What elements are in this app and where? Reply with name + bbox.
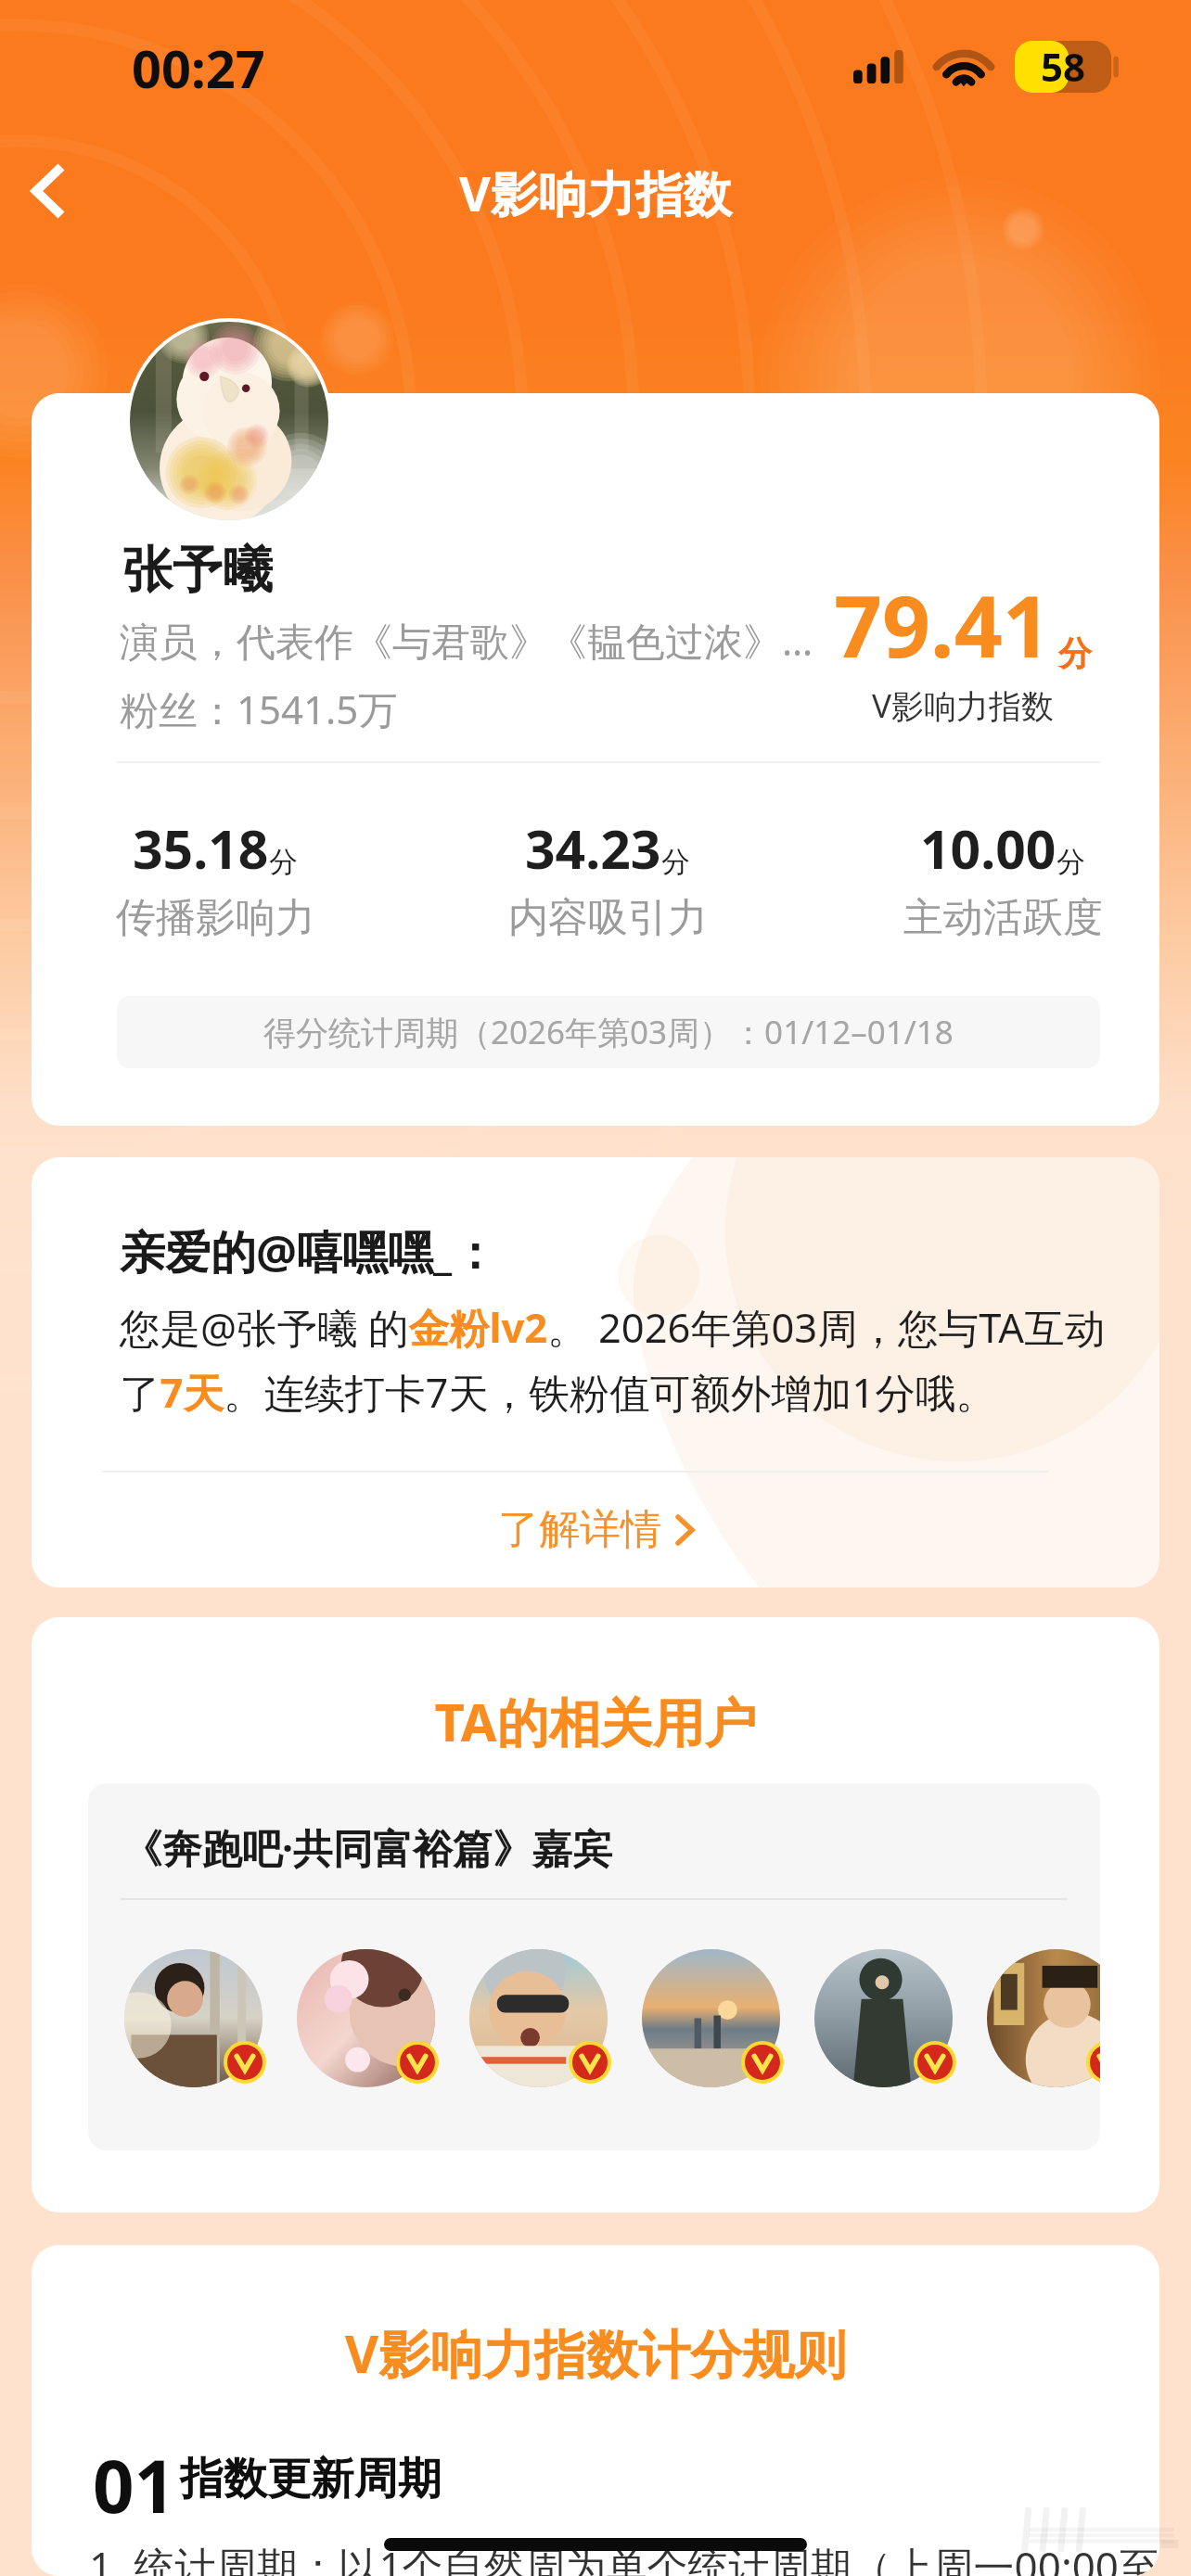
- staticText: 张予曦: [122, 539, 273, 602]
- staticText: V影响力指数计分规则: [32, 2317, 1159, 2388]
- staticText: 指数更新周期: [180, 2452, 442, 2506]
- staticText: 《奔跑吧·共同富裕篇》嘉宾: [122, 1820, 613, 1875]
- button[interactable]: Related user: [814, 1949, 953, 2087]
- button[interactable]: 了解详情: [32, 1471, 1159, 1588]
- staticText: V影响力指数: [459, 159, 732, 225]
- staticText: 您是@张予曦 的金粉lv2。 2026年第03周，您与TA互动了7天。连续打卡7…: [120, 1299, 1114, 1420]
- button[interactable]: 35.18: [32, 812, 419, 942]
- staticText: TA的相关用户: [32, 1686, 1159, 1756]
- staticText: V影响力指数: [872, 683, 1055, 728]
- button[interactable]: Related user: [987, 1949, 1100, 2087]
- staticText: 1. 统计周期：以1个自然周为单个统计周期（上周一00:00至: [89, 2538, 1159, 2576]
- staticText: 内容吸引力: [508, 893, 708, 942]
- button[interactable]: Related user: [297, 1949, 435, 2087]
- button[interactable]: Related user: [469, 1949, 608, 2087]
- button[interactable]: 张予曦: [106, 523, 1117, 746]
- staticText: 79.41: [834, 567, 1051, 682]
- staticText: 01: [93, 2436, 176, 2534]
- staticText: 传播影响力: [116, 893, 315, 942]
- staticText: 了解详情: [498, 1504, 661, 1555]
- staticText: 主动活跃度: [903, 893, 1103, 942]
- staticText: 分: [269, 844, 298, 880]
- button[interactable]: 34.23: [403, 812, 812, 942]
- staticText: 00:27: [132, 32, 265, 103]
- button[interactable]: Back: [2, 145, 95, 237]
- staticText: 演员，代表作《与君歌》《韫色过浓》…: [120, 614, 813, 667]
- button[interactable]: Profile photo: [126, 318, 332, 524]
- staticText: 分: [1057, 844, 1085, 880]
- staticText: 10.00: [920, 812, 1057, 885]
- staticText: 35.18: [133, 812, 269, 885]
- staticText: 粉丝：1541.5万: [120, 682, 398, 735]
- staticText: 分: [1058, 632, 1092, 674]
- staticText: 得分统计周期（2026年第03周）：01/12–01/18: [263, 1010, 954, 1054]
- button[interactable]: Related user: [124, 1949, 263, 2087]
- button[interactable]: Related user: [642, 1949, 780, 2087]
- staticText: 58: [1041, 40, 1086, 92]
- staticText: 分: [661, 844, 690, 880]
- staticText: 亲爱的@嘻嘿嘿_：: [120, 1220, 498, 1282]
- staticText: 34.23: [525, 812, 661, 885]
- button[interactable]: 10.00: [799, 812, 1159, 942]
